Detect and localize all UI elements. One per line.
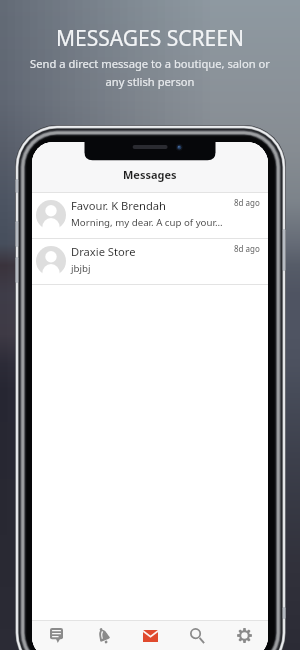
button[interactable]: Chats bbox=[32, 621, 80, 650]
staticText: Morning, my dear. A cup of your... bbox=[71, 216, 223, 229]
button[interactable]: Mail bbox=[127, 621, 174, 650]
button[interactable]: Notifications bbox=[80, 621, 127, 650]
staticText: Favour. K Brendah bbox=[71, 198, 166, 213]
button[interactable]: Settings bbox=[221, 621, 268, 650]
staticText: 8d ago bbox=[234, 197, 260, 208]
staticText: MESSAGES SCREEN bbox=[56, 24, 244, 53]
staticText: jbjbj bbox=[71, 262, 91, 275]
staticText: Send a direct message to a boutique, sal… bbox=[24, 56, 276, 89]
button[interactable]: Search bbox=[174, 621, 221, 650]
staticText: 8d ago bbox=[234, 243, 260, 254]
button[interactable]: Draxie Store bbox=[32, 239, 268, 284]
staticText: Draxie Store bbox=[71, 244, 136, 259]
button[interactable]: Favour. K Brendah bbox=[32, 193, 268, 238]
staticText: Messages bbox=[123, 167, 177, 182]
